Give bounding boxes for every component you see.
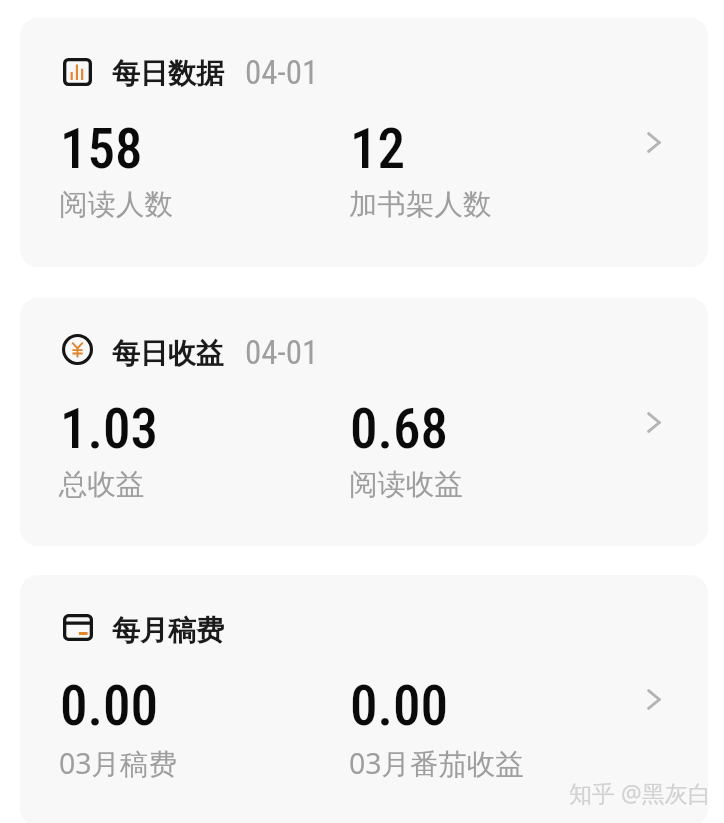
staticText: 1.03 <box>60 397 159 461</box>
staticText: 04-01 <box>245 53 319 92</box>
button[interactable]: 每日收益 <box>20 298 708 546</box>
staticText: 0.00 <box>60 674 159 738</box>
staticText: 知乎 @黑灰白 <box>569 777 711 808</box>
staticText: 03月番茄收益 <box>349 744 525 783</box>
staticText: 加书架人数 <box>349 187 492 223</box>
button[interactable]: View details <box>634 122 674 162</box>
staticText: 04-01 <box>245 333 319 372</box>
button[interactable]: View details <box>634 402 674 442</box>
staticText: 每月稿费 <box>112 613 224 648</box>
staticText: 总收益 <box>59 467 145 503</box>
staticText: 每日收益 <box>112 336 224 371</box>
staticText: 阅读收益 <box>349 467 463 503</box>
staticText: 12 <box>350 117 406 181</box>
staticText: 158 <box>60 117 143 181</box>
staticText: 03月稿费 <box>59 744 178 783</box>
staticText: 每日数据 <box>112 56 224 91</box>
button[interactable]: View details <box>634 679 674 719</box>
staticText: 0.68 <box>350 397 449 461</box>
staticText: 阅读人数 <box>59 187 173 223</box>
button[interactable]: 每月稿费 <box>20 575 708 823</box>
staticText: 0.00 <box>350 674 449 738</box>
button[interactable]: 每日数据 <box>20 18 708 267</box>
